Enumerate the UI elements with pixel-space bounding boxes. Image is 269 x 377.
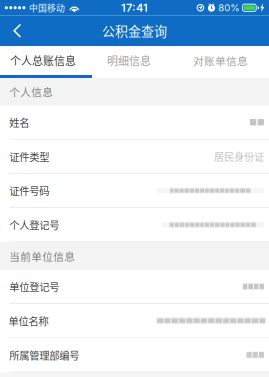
- staticText: 姓名: [9, 115, 29, 130]
- button[interactable]: 对账单信息: [172, 46, 269, 75]
- button[interactable]: 返回: [0, 16, 37, 46]
- staticText: 对账单信息: [193, 53, 248, 68]
- button[interactable]: 个人总账信息: [0, 46, 86, 75]
- staticText: 个人登记号: [9, 217, 59, 232]
- staticText: 80%: [218, 2, 239, 13]
- staticText: 公积金查询: [102, 21, 167, 40]
- staticText: 单位登记号: [9, 279, 59, 294]
- button[interactable]: 明细信息: [86, 46, 172, 75]
- staticText: 证件号码: [9, 183, 49, 198]
- staticText: 17:41: [121, 1, 148, 14]
- staticText: 明细信息: [107, 52, 151, 68]
- staticText: 中国移动: [29, 1, 65, 14]
- staticText: 所属管理部编号: [9, 347, 79, 362]
- staticText: 居民身份证: [214, 149, 264, 164]
- staticText: 单位名称: [8, 313, 48, 328]
- staticText: 当前单位信息: [9, 248, 75, 264]
- staticText: 证件类型: [9, 149, 49, 164]
- staticText: 个人总账信息: [10, 53, 76, 68]
- staticText: 个人信息: [9, 84, 53, 99]
